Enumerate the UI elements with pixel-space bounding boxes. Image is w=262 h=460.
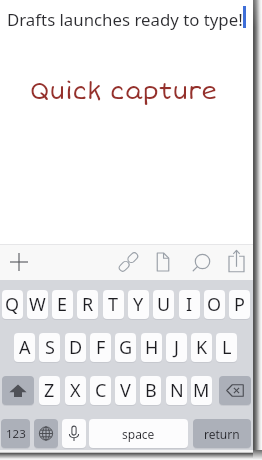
button[interactable]: J (166, 333, 187, 362)
staticText: E (57, 292, 68, 317)
button[interactable]: T (103, 290, 124, 319)
staticText: O (207, 292, 222, 317)
button[interactable]: Z (39, 376, 60, 405)
button[interactable]: F (90, 333, 111, 362)
button[interactable]: Documents (150, 248, 176, 276)
button[interactable]: Y (128, 290, 149, 319)
staticText: M (193, 378, 210, 403)
staticText: S (45, 335, 55, 360)
staticText: Drafts launches ready to type! (7, 8, 243, 31)
staticText: W (29, 292, 46, 317)
button[interactable]: X (65, 376, 86, 405)
staticText: K (196, 335, 208, 360)
staticText: P (234, 292, 245, 317)
staticText: D (69, 335, 83, 360)
button[interactable]: V (115, 376, 136, 405)
button[interactable]: New draft (4, 246, 34, 278)
button[interactable]: Search (188, 248, 215, 276)
button[interactable]: Dictate (62, 419, 86, 448)
button[interactable]: D (65, 333, 86, 362)
button[interactable]: Link (115, 248, 142, 276)
staticText: J (174, 335, 179, 360)
button[interactable]: P (229, 290, 250, 319)
staticText: I (186, 292, 193, 317)
button[interactable]: O (204, 290, 225, 319)
button[interactable]: Q (2, 290, 23, 319)
staticText: A (19, 335, 31, 360)
button[interactable]: W (27, 290, 48, 319)
staticText: V (120, 378, 131, 403)
staticText: L (222, 335, 232, 360)
staticText: T (108, 292, 119, 317)
button[interactable]: Shift (2, 376, 34, 405)
button[interactable]: G (115, 333, 136, 362)
button[interactable]: space (89, 419, 188, 448)
button[interactable]: B (140, 376, 161, 405)
button[interactable]: N (166, 376, 187, 405)
button[interactable]: Share (223, 247, 250, 277)
button[interactable]: Switch keyboard (34, 419, 58, 448)
staticText: N (170, 378, 184, 403)
button[interactable]: E (52, 290, 73, 319)
button[interactable]: M (191, 376, 212, 405)
button[interactable]: L (216, 333, 237, 362)
staticText: return (204, 426, 240, 442)
button[interactable]: Backspace (219, 376, 251, 405)
button[interactable]: U (153, 290, 174, 319)
staticText: Z (44, 378, 55, 403)
staticText: 123 (6, 426, 26, 442)
staticText: F (96, 335, 106, 360)
button[interactable]: return (193, 419, 251, 448)
button[interactable]: S (39, 333, 60, 362)
button[interactable]: K (191, 333, 212, 362)
staticText: G (119, 335, 133, 360)
staticText: U (157, 292, 171, 317)
staticText: H (145, 335, 159, 360)
staticText: Quick capture (30, 77, 217, 106)
staticText: space (122, 426, 155, 442)
staticText: R (82, 292, 94, 317)
button[interactable]: A (14, 333, 35, 362)
staticText: C (95, 378, 107, 403)
button[interactable]: 123 (1, 419, 30, 448)
staticText: X (70, 378, 81, 403)
button[interactable]: R (77, 290, 98, 319)
button[interactable]: I (179, 290, 200, 319)
staticText: Y (133, 292, 144, 317)
button[interactable]: C (90, 376, 111, 405)
button[interactable]: H (141, 333, 162, 362)
staticText: Q (5, 292, 20, 317)
staticText: B (145, 378, 157, 403)
